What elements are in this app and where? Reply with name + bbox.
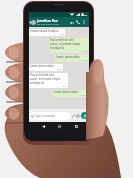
button[interactable]: Voice message — [81, 112, 88, 119]
button[interactable]: Fusce eleifend velit — [49, 38, 89, 53]
staticText: purus, vel ornare neque — [30, 77, 61, 81]
button[interactable]: Fusce eleifend velit — [29, 73, 68, 88]
staticText: Jonathan Doe — [37, 19, 58, 23]
staticText: Type a message — [35, 114, 56, 118]
staticText: 10:45 — [81, 50, 86, 53]
staticText: tristique id — [50, 46, 64, 50]
button[interactable]: More options — [82, 20, 86, 24]
button[interactable]: Home — [56, 123, 62, 129]
staticText: 10:45 — [81, 94, 86, 97]
button[interactable] — [31, 20, 36, 25]
staticText: ornare neque tristique — [30, 29, 59, 33]
button[interactable]: ornare neque tristique — [29, 29, 65, 36]
staticText: 10:45 — [81, 59, 86, 62]
staticText: 10:45 — [59, 33, 64, 36]
staticText: Lorem ipsum dolor — [56, 55, 81, 59]
staticText: 10:45 — [57, 68, 62, 71]
staticText: Lorem ipsum dolor — [54, 90, 79, 94]
button[interactable]: Back — [29, 19, 31, 25]
staticText: purus, vel ornare neque — [50, 42, 81, 46]
button[interactable]: Video call — [69, 20, 74, 25]
button[interactable]: Type a message — [30, 112, 70, 120]
button[interactable]: Back — [40, 123, 46, 129]
staticText: tristique id — [30, 81, 44, 85]
button[interactable]: Lorem ipsum dolor — [53, 90, 89, 97]
staticText: Fusce eleifend velit — [30, 73, 54, 77]
staticText: 10:45 — [81, 13, 88, 16]
button[interactable]: Recents — [73, 123, 79, 129]
staticText: Fusce eleifend velit — [50, 38, 74, 42]
button[interactable]: Attach — [71, 114, 75, 118]
button[interactable]: Call — [76, 20, 80, 24]
button[interactable]: Lorem ipsum dolor — [55, 55, 89, 62]
button[interactable]: Lorem ipsum dolor — [29, 64, 63, 71]
button[interactable]: Camera — [76, 114, 80, 118]
staticText: 10:45 — [62, 85, 67, 88]
staticText: Lorem ipsum dolor — [30, 64, 55, 68]
staticText: last seen today at 10:45 — [37, 23, 60, 26]
